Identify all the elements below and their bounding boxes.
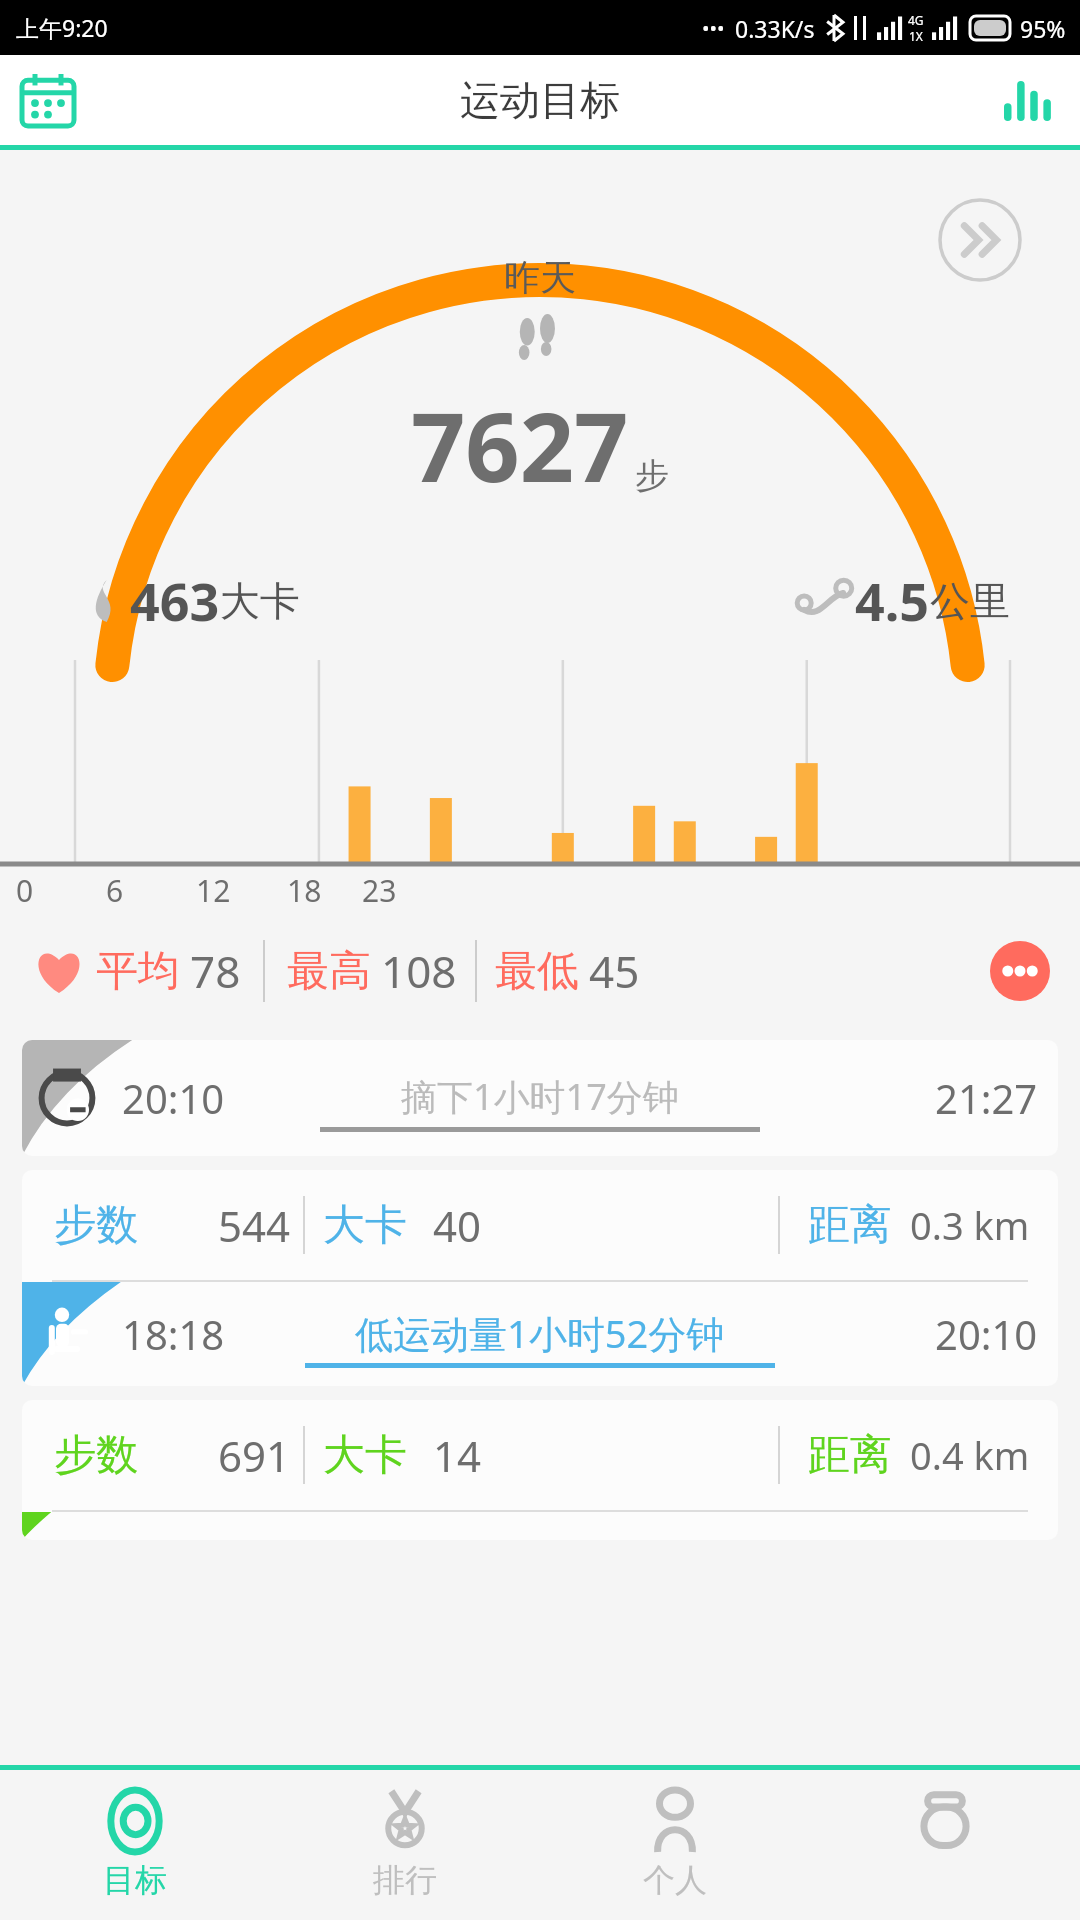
staticText: 20:10 (935, 1307, 1038, 1361)
staticText: 公里 (930, 576, 1010, 626)
staticText: 0 (16, 870, 34, 911)
staticText: 20:10 (122, 1071, 225, 1125)
button[interactable]: Statistics (1000, 69, 1062, 131)
staticText: 低运动量1小时52分钟 (355, 1307, 725, 1359)
button[interactable]: More (990, 941, 1050, 1001)
button[interactable]: 20:10 (22, 1040, 1058, 1156)
staticText: 544 (218, 1197, 291, 1254)
staticText: 691 (218, 1427, 291, 1484)
staticText: 40 (433, 1197, 482, 1254)
button[interactable]: 步数 (22, 1400, 1058, 1540)
staticText: 步 (635, 454, 669, 497)
staticText: 18 (287, 870, 322, 911)
staticText: 个人 (643, 1860, 707, 1900)
staticText: 12 (196, 870, 231, 911)
staticText: 0.33K/s (735, 13, 815, 44)
staticText: 昨天 (504, 255, 576, 300)
staticText: 大卡 (323, 1429, 407, 1482)
button[interactable]: Next (938, 198, 1022, 282)
button[interactable]: 排行 (270, 1770, 540, 1920)
staticText: 平均 (96, 945, 180, 998)
button[interactable]: 目标 (0, 1770, 270, 1920)
staticText: 1X (909, 28, 923, 44)
button[interactable]: 步数 (22, 1170, 1058, 1386)
staticText: 排行 (373, 1860, 437, 1900)
staticText: 大卡 (220, 576, 300, 626)
staticText: 距离 (808, 1429, 892, 1482)
staticText: 目标 (103, 1860, 167, 1900)
staticText: 21:27 (935, 1071, 1038, 1125)
staticText: 0.4 km (910, 1429, 1030, 1481)
staticText: 大卡 (323, 1199, 407, 1252)
staticText: 最低 (495, 945, 579, 998)
staticText: 距离 (808, 1199, 892, 1252)
staticText: 0.3 km (910, 1199, 1030, 1251)
staticText: 运动目标 (460, 75, 620, 125)
staticText: ••• (702, 15, 725, 42)
staticText: 45 (589, 941, 640, 1001)
staticText: 463 (130, 565, 220, 636)
staticText: 108 (381, 941, 457, 1001)
staticText: 78 (190, 941, 241, 1001)
staticText: 步数 (54, 1199, 138, 1252)
staticText: 14 (433, 1427, 482, 1484)
staticText: 摘下1小时17分钟 (401, 1072, 679, 1121)
staticText: 18:18 (122, 1307, 225, 1361)
staticText: 6 (106, 870, 124, 911)
staticText: 上午9:20 (16, 12, 108, 43)
staticText: 7627 (411, 380, 629, 509)
staticText: 95% (1020, 13, 1066, 44)
staticText: 最高 (287, 945, 371, 998)
button[interactable]: 个人 (540, 1770, 810, 1920)
staticText: 步数 (54, 1429, 138, 1482)
button[interactable]: Device (810, 1770, 1080, 1920)
staticText: 4.5 (855, 565, 930, 636)
staticText: 4G (908, 12, 924, 28)
staticText: 23 (362, 870, 397, 911)
button[interactable]: 平均 (0, 916, 1080, 1026)
button[interactable]: Calendar (18, 70, 78, 130)
